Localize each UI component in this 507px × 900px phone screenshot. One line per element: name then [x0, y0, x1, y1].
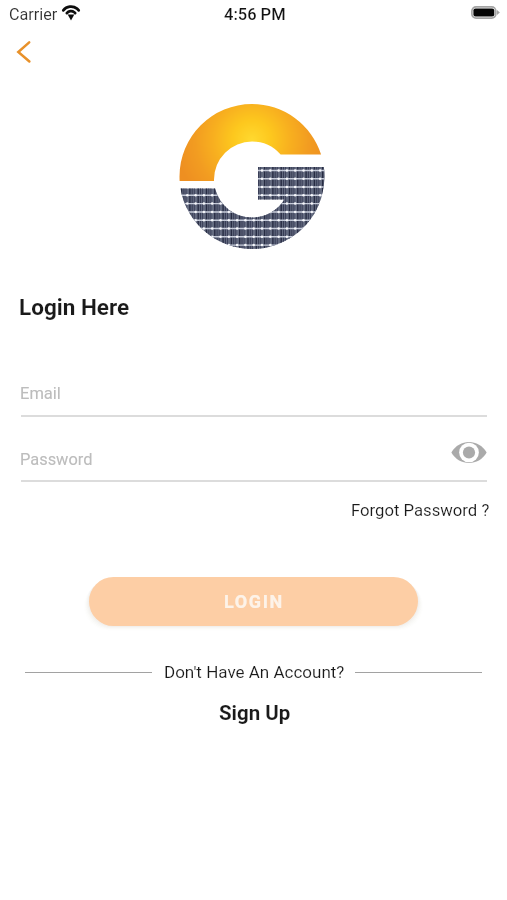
button[interactable]: LOGIN	[89, 577, 418, 626]
staticText: Don't Have An Account?	[164, 662, 345, 682]
staticText: 4:56 PM	[224, 5, 286, 24]
staticText: Forgot Password ?	[351, 501, 490, 521]
button[interactable]: Show password	[449, 432, 489, 472]
staticText: Email	[20, 384, 61, 403]
staticText: LOGIN	[224, 591, 284, 612]
staticText: Password	[20, 450, 93, 469]
staticText: Sign Up	[219, 701, 291, 725]
button[interactable]: Back	[1, 30, 45, 74]
staticText: Carrier	[9, 5, 58, 24]
staticText: Login Here	[19, 294, 130, 320]
button[interactable]: Forgot Password ?	[339, 494, 502, 528]
button[interactable]: Sign Up	[205, 695, 305, 731]
